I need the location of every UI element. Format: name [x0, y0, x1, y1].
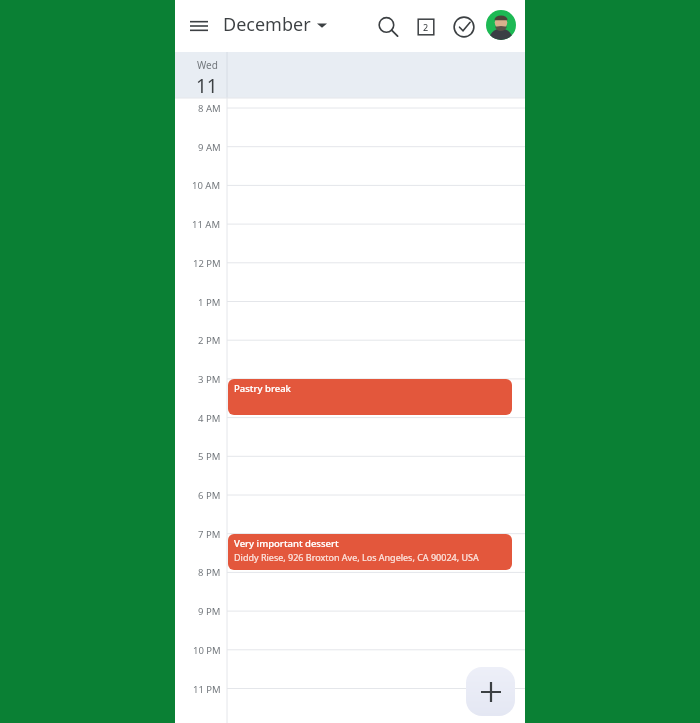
button[interactable]: Account	[486, 10, 516, 40]
button[interactable]: Switch calendar view	[413, 14, 439, 40]
staticText: Diddy Riese, 926 Broxton Ave, Los Angele…	[234, 551, 479, 563]
staticText: 3 PM	[198, 373, 221, 386]
button[interactable]: Create new event	[466, 667, 515, 716]
staticText: 8 AM	[198, 102, 221, 115]
button[interactable]: Pastry break	[228, 379, 512, 415]
button[interactable]: Open navigation menu	[187, 14, 211, 38]
button[interactable]: Tasks	[451, 14, 477, 40]
staticText: 8 PM	[198, 566, 221, 579]
button[interactable]: Very important dessert	[228, 534, 512, 570]
staticText: 7 PM	[198, 528, 221, 541]
button[interactable]: December	[223, 12, 327, 37]
staticText: 4 PM	[198, 412, 221, 425]
staticText: 1 PM	[198, 296, 221, 309]
staticText: 10 PM	[193, 644, 221, 657]
button[interactable]: Search	[375, 14, 401, 40]
staticText: 2 PM	[198, 334, 221, 347]
staticText: 11 AM	[192, 218, 221, 231]
button[interactable]: Wed	[175, 52, 525, 98]
staticText: December	[223, 12, 311, 37]
staticText: 9 AM	[198, 141, 221, 154]
staticText: Pastry break	[234, 382, 291, 395]
staticText: Very important dessert	[234, 537, 339, 550]
staticText: Wed	[197, 58, 218, 72]
staticText: 5 PM	[198, 450, 221, 463]
staticText: 12 PM	[193, 257, 221, 270]
staticText: 10 AM	[192, 179, 221, 192]
staticText: 9 PM	[198, 605, 221, 618]
staticText: 11 PM	[193, 683, 221, 696]
staticText: 11	[196, 73, 218, 99]
staticText: 6 PM	[198, 489, 221, 502]
staticText: 2	[423, 21, 429, 33]
